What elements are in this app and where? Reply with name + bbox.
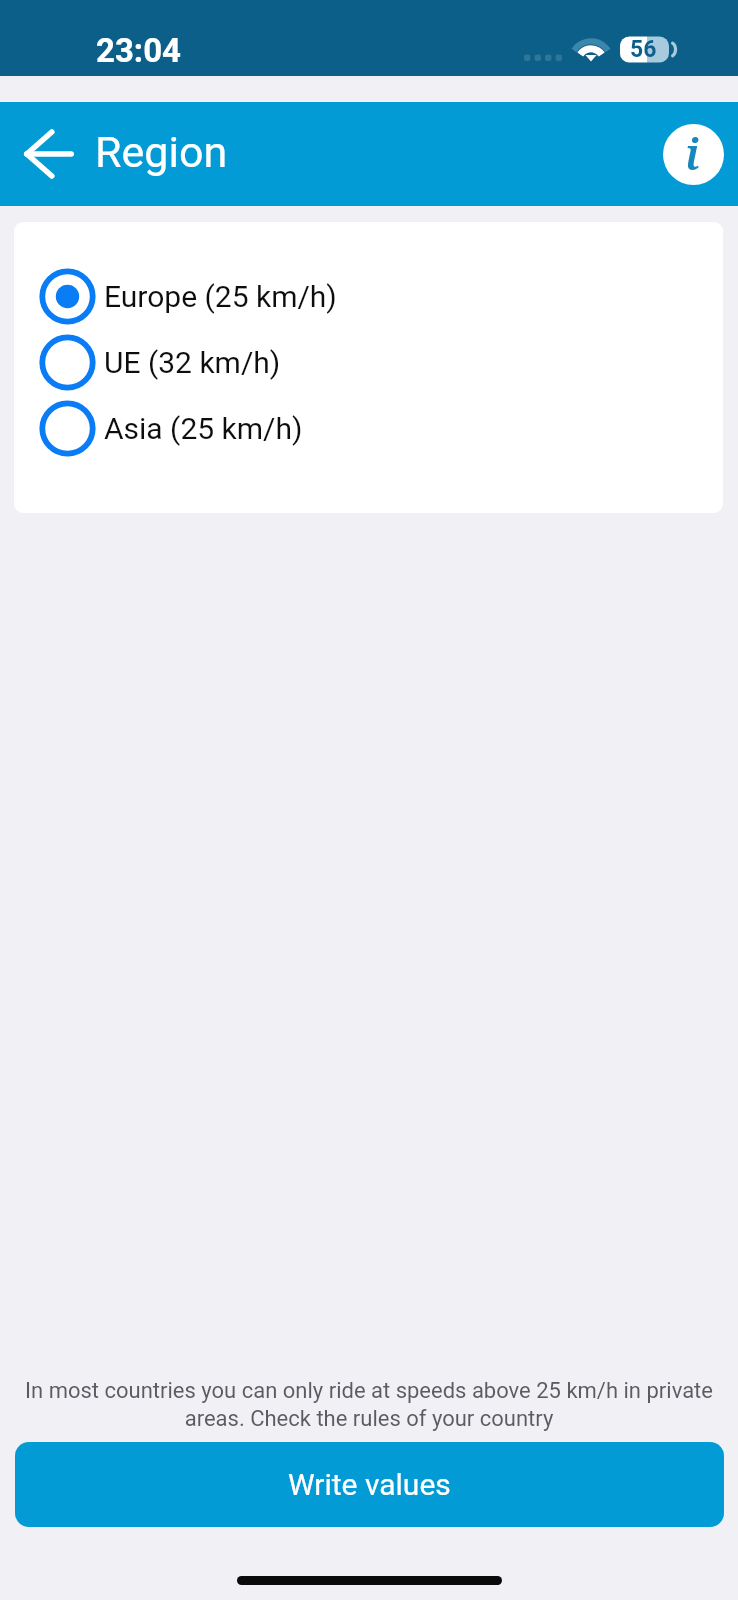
staticText: Write values xyxy=(288,1467,451,1502)
button[interactable]: Asia (25 km/h) xyxy=(14,400,723,457)
button[interactable]: Back xyxy=(4,109,94,199)
staticText: Europe (25 km/h) xyxy=(104,279,337,314)
staticText: Region xyxy=(95,127,228,177)
staticText: In most countries you can only ride at s… xyxy=(14,1378,724,1432)
staticText: i xyxy=(685,124,700,183)
staticText: 23:04 xyxy=(96,31,182,70)
staticText: UE (32 km/h) xyxy=(104,345,281,380)
button[interactable]: Write values xyxy=(15,1442,724,1527)
button[interactable]: Europe (25 km/h) xyxy=(14,268,723,325)
button[interactable]: UE (32 km/h) xyxy=(14,334,723,391)
button[interactable]: Info xyxy=(663,124,724,185)
staticText: Asia (25 km/h) xyxy=(104,411,303,446)
staticText: 56 xyxy=(630,36,657,62)
